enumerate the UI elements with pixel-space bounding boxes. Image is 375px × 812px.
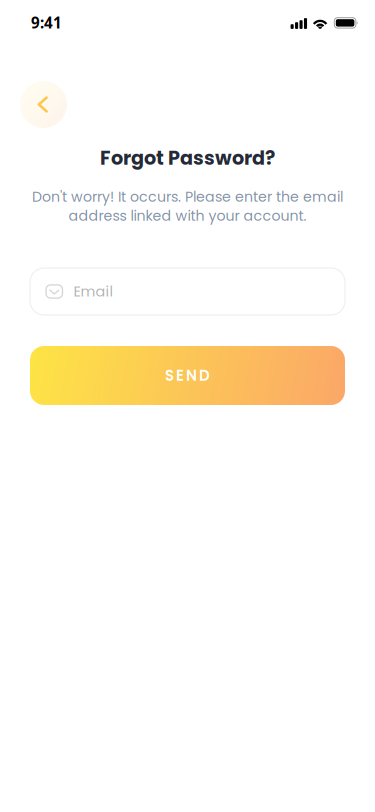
button[interactable]: Back [20,81,67,128]
staticText: Forgot Password? [100,145,275,171]
staticText: Email [73,281,113,302]
button[interactable]: S E N D [30,346,345,405]
staticText: Don't worry! It occurs. Please enter the… [32,187,343,207]
staticText: address linked with your account. [68,206,306,226]
staticText: S E N D [165,365,210,386]
staticText: 9:41 [31,12,62,33]
